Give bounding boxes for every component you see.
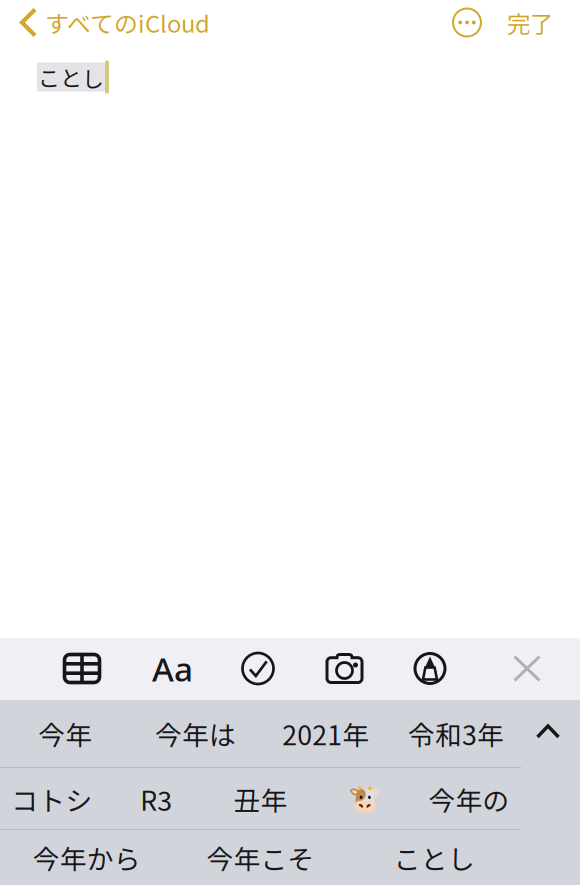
button[interactable]: Table (55, 640, 109, 696)
button[interactable]: Markup (403, 640, 457, 696)
staticText: 今年は (155, 714, 236, 753)
button[interactable]: コトシ (0, 768, 104, 830)
staticText: すべてのiCloud (45, 5, 210, 40)
staticText: R3 (140, 780, 172, 818)
staticText: ことし (394, 838, 475, 877)
button[interactable]: Camera (317, 640, 371, 696)
staticText: 今年 (38, 714, 92, 753)
button[interactable]: Show more candidates (521, 699, 580, 768)
button[interactable]: 今年は (130, 699, 260, 768)
button[interactable]: More options (440, 0, 494, 45)
button[interactable]: 令和3年 (391, 699, 521, 768)
button[interactable]: 今年 (0, 699, 130, 768)
button[interactable]: Hide keyboard (500, 640, 554, 696)
button[interactable]: ことし (347, 830, 521, 885)
button[interactable]: 今年から (0, 830, 174, 885)
staticText: 完了 (507, 6, 553, 39)
staticText: 令和3年 (408, 714, 504, 753)
staticText: 今年こそ (206, 838, 314, 877)
staticText: ことし (38, 61, 104, 93)
button[interactable]: 完了 (494, 0, 566, 45)
button[interactable]: すべてのiCloud (0, 0, 218, 45)
staticText: 🐮 (348, 783, 381, 815)
staticText: 2021年 (282, 714, 369, 753)
button[interactable]: R3 (104, 768, 208, 830)
button[interactable]: 今年の (417, 768, 521, 830)
staticText: 今年の (428, 780, 509, 818)
button[interactable]: Text format (145, 640, 199, 696)
button[interactable]: 今年こそ (174, 830, 347, 885)
staticText: コトシ (12, 780, 93, 818)
button[interactable]: 2021年 (260, 699, 391, 768)
staticText: 今年から (33, 838, 141, 877)
button[interactable]: Checklist (231, 640, 285, 696)
staticText: Aa (152, 646, 193, 691)
button[interactable]: 丑年 (208, 768, 313, 830)
button[interactable]: 🐮 (313, 768, 417, 830)
staticText: 丑年 (233, 780, 287, 818)
